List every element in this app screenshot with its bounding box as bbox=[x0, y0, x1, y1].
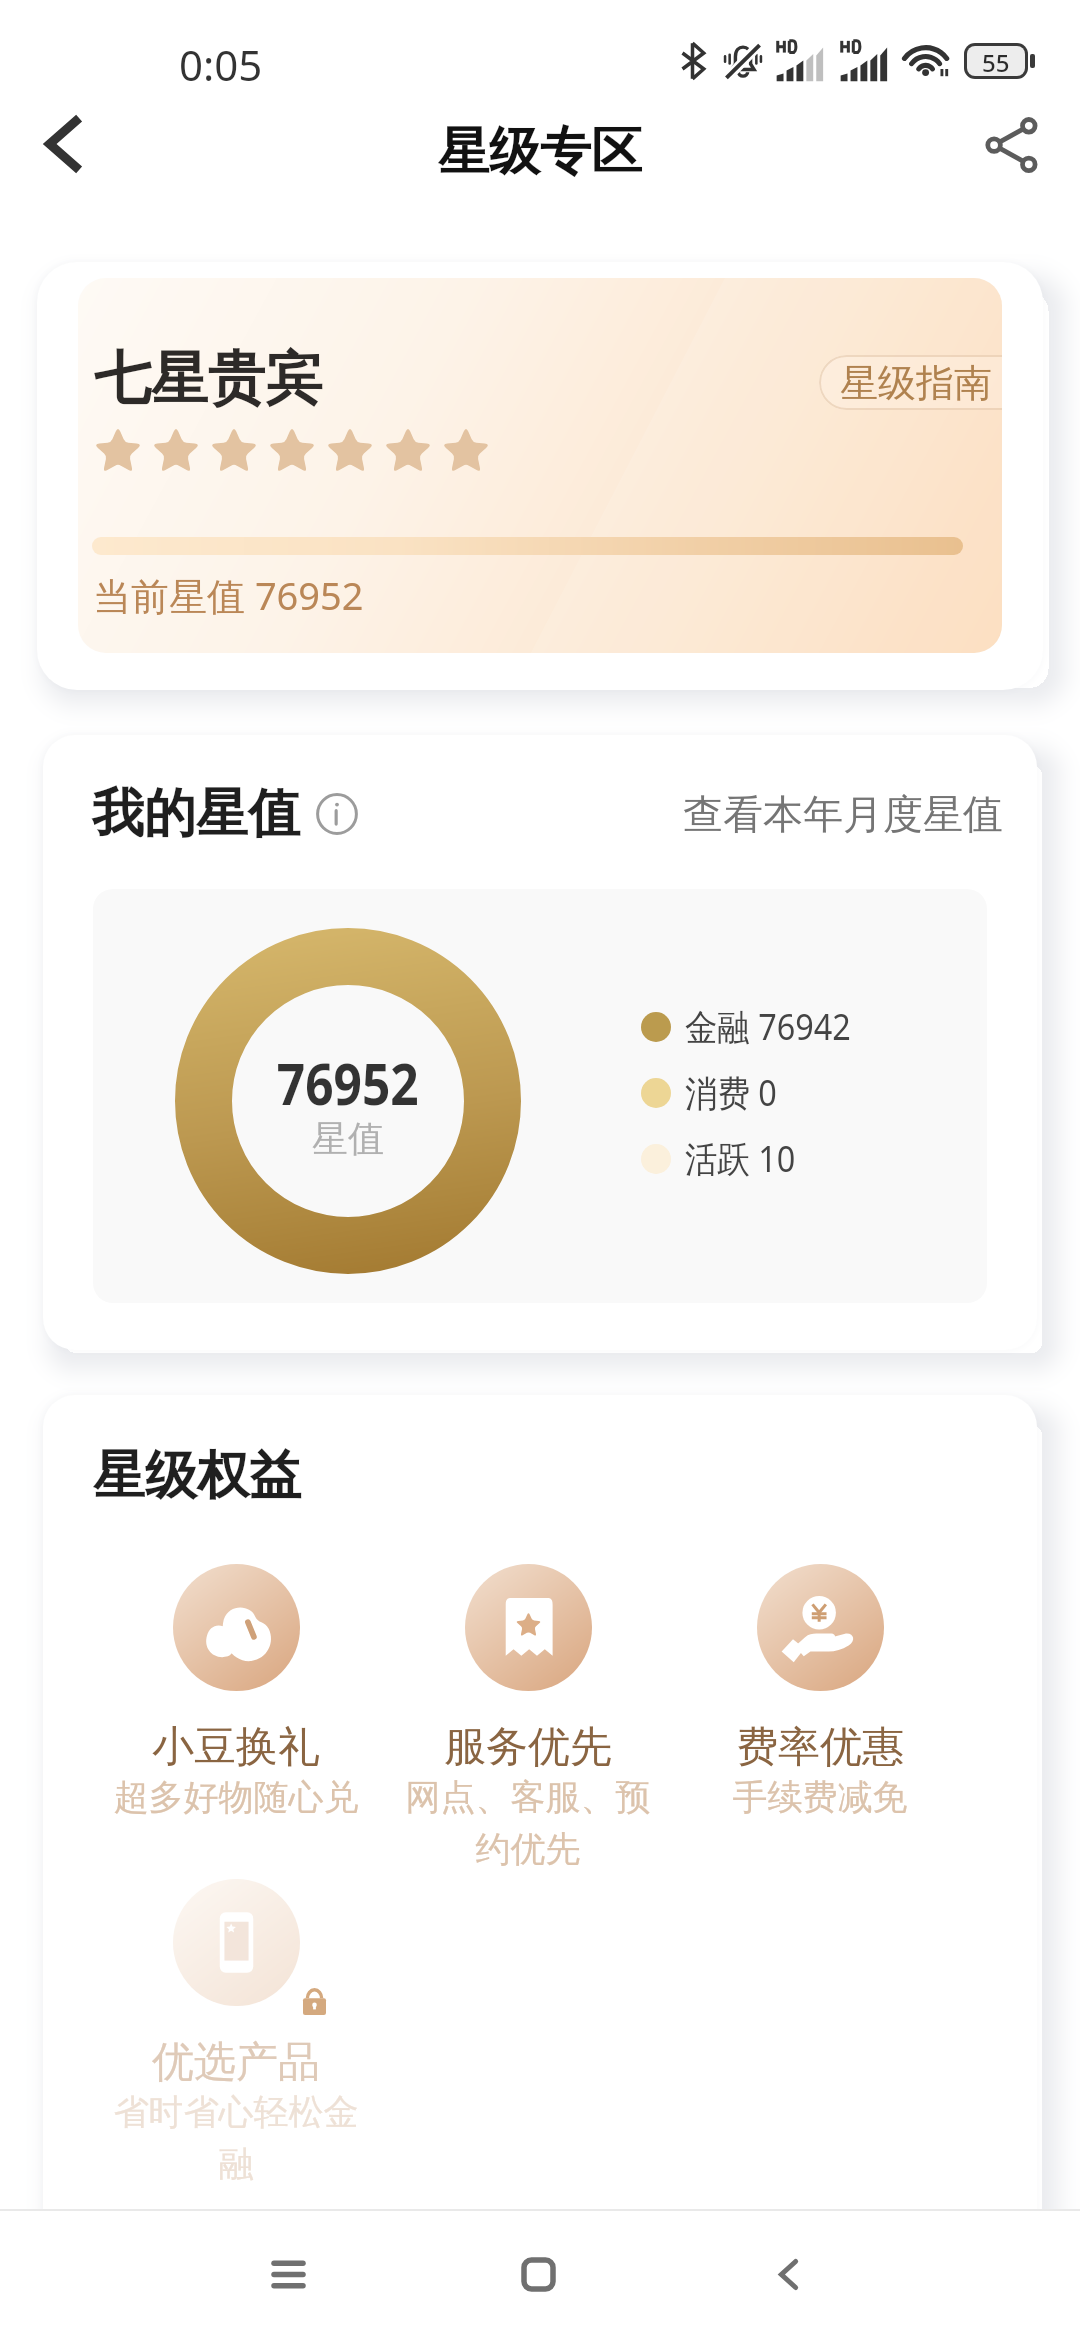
staticText: 星值 bbox=[312, 1116, 384, 1161]
staticText: 金融 76942 bbox=[685, 1002, 851, 1051]
staticText: 55 bbox=[982, 46, 1010, 76]
staticText: 优选产品 bbox=[152, 2036, 320, 2089]
button[interactable]: 七星贵宾 bbox=[78, 278, 1002, 653]
staticText: 消费 0 bbox=[685, 1068, 777, 1117]
button[interactable]: 服务优先 bbox=[382, 1564, 674, 1871]
button[interactable]: Back bbox=[16, 96, 112, 192]
button[interactable]: Home bbox=[463, 2199, 613, 2340]
button[interactable]: 优选产品 bbox=[90, 1879, 382, 2186]
staticText: 我的星值 bbox=[92, 781, 300, 847]
staticText: 超多好物随心兑 bbox=[108, 1775, 364, 1819]
button[interactable]: Back bbox=[713, 2199, 863, 2340]
button[interactable]: 小豆换礼 bbox=[90, 1564, 382, 1819]
button[interactable]: 查看本年月度星值 bbox=[683, 789, 1003, 839]
staticText: 星级指南 bbox=[840, 359, 992, 407]
staticText: 服务优先 bbox=[444, 1721, 612, 1774]
staticText: 0:05 bbox=[179, 36, 263, 93]
button[interactable]: Share bbox=[964, 96, 1060, 192]
staticText: 网点、客服、预约优先 bbox=[400, 1775, 656, 1871]
button[interactable]: 费率优惠 bbox=[674, 1564, 966, 1819]
button[interactable]: 星级指南 bbox=[819, 355, 1002, 410]
button[interactable]: Info bbox=[314, 791, 360, 837]
staticText: 活跃 10 bbox=[685, 1134, 796, 1183]
staticText: 费率优惠 bbox=[736, 1721, 904, 1774]
staticText: 小豆换礼 bbox=[152, 1721, 320, 1774]
staticText: 七星贵宾 bbox=[94, 343, 322, 415]
staticText: 76952 bbox=[277, 1044, 419, 1122]
staticText: 当前星值 76952 bbox=[93, 569, 364, 621]
staticText: 手续费减免 bbox=[692, 1775, 948, 1819]
button[interactable]: Recent apps bbox=[213, 2199, 363, 2340]
staticText: 星级权益 bbox=[93, 1443, 301, 1509]
staticText: 省时省心轻松金融 bbox=[108, 2090, 364, 2186]
staticText: 查看本年月度星值 bbox=[683, 789, 1003, 839]
staticText: 星级专区 bbox=[438, 120, 642, 184]
